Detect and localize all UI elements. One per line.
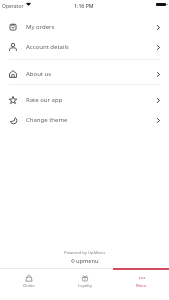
button[interactable]: My orders — [0, 17, 169, 37]
button[interactable]: About us — [0, 64, 169, 84]
button[interactable]: Change theme — [0, 110, 169, 130]
staticText: upmenu — [76, 257, 99, 265]
staticText: Loyalty — [78, 283, 92, 289]
button[interactable]: More — [113, 268, 169, 300]
button[interactable]: Account details — [0, 37, 169, 57]
staticText: Change theme — [26, 116, 68, 124]
other: More — [138, 274, 146, 282]
button[interactable]: Loyalty — [57, 268, 113, 300]
staticText: Rate our app — [26, 96, 63, 104]
staticText: Operator — [2, 3, 24, 10]
other: Order — [25, 274, 33, 282]
staticText: Account details — [26, 43, 69, 51]
staticText: More — [136, 283, 147, 289]
staticText: About us — [26, 70, 52, 78]
other: Loyalty — [81, 274, 89, 282]
staticText: 1:16 PM — [74, 2, 94, 9]
staticText: My orders — [26, 23, 55, 31]
button[interactable]: Order — [0, 268, 57, 300]
staticText: Powered by UpMenu — [64, 250, 105, 256]
button[interactable]: Rate our app — [0, 90, 169, 110]
staticText: Order — [23, 283, 35, 289]
